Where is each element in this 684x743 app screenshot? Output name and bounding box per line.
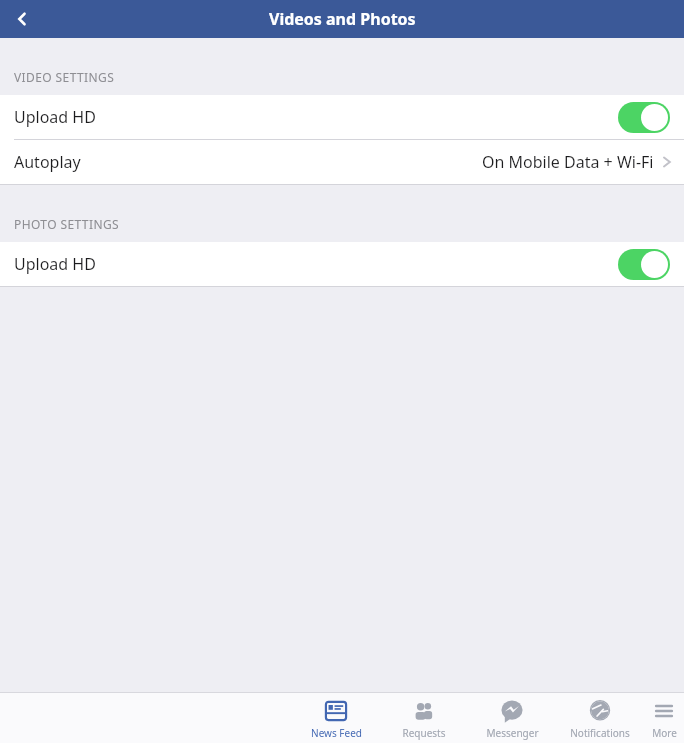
staticText: On Mobile Data + Wi-Fi: [482, 151, 654, 173]
staticText: Videos and Photos: [269, 8, 416, 30]
staticText: Messenger: [486, 726, 539, 740]
button[interactable]: Upload HD: [0, 95, 684, 139]
button[interactable]: Autoplay: [0, 140, 684, 184]
button[interactable]: Notifications: [556, 693, 644, 743]
staticText: Requests: [402, 726, 446, 740]
button[interactable]: Messenger: [468, 693, 556, 743]
button[interactable]: Upload HD: [0, 242, 684, 286]
button[interactable]: Back: [0, 0, 44, 38]
staticText: Upload HD: [14, 253, 96, 275]
staticText: PHOTO SETTINGS: [14, 216, 120, 232]
button[interactable]: News Feed: [292, 693, 380, 743]
staticText: VIDEO SETTINGS: [14, 69, 115, 85]
button[interactable]: Toggle on: [618, 249, 670, 280]
staticText: Notifications: [570, 726, 630, 740]
button[interactable]: Requests: [380, 693, 468, 743]
staticText: Autoplay: [14, 151, 81, 173]
staticText: More: [652, 726, 677, 740]
button[interactable]: More: [644, 693, 684, 743]
staticText: News Feed: [311, 726, 362, 740]
staticText: Upload HD: [14, 106, 96, 128]
button[interactable]: Toggle on: [618, 102, 670, 133]
